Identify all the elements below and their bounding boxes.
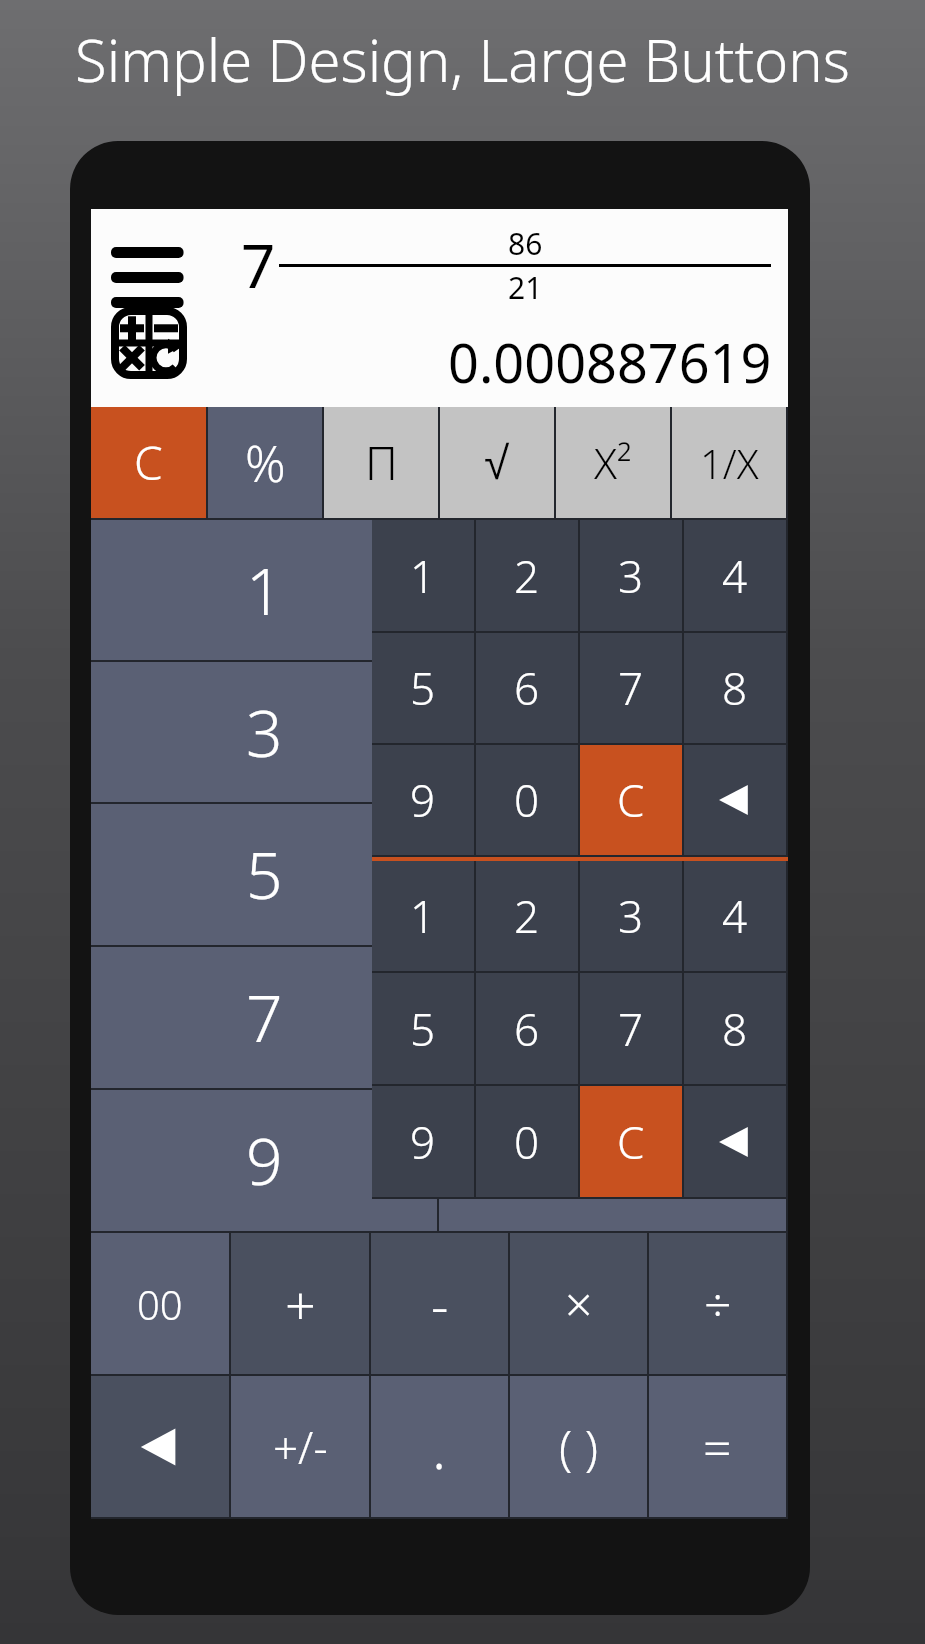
staticText: = xyxy=(703,1413,732,1481)
button[interactable]: 1 xyxy=(372,520,474,631)
staticText: 21 xyxy=(508,267,543,308)
button[interactable]: 2 xyxy=(476,861,578,971)
staticText: +/- xyxy=(273,1417,328,1477)
button[interactable]: × xyxy=(510,1233,647,1374)
staticText: 1 xyxy=(410,886,436,946)
staticText: . xyxy=(432,1407,447,1486)
staticText: 0 xyxy=(514,770,540,830)
staticText: 7 xyxy=(618,999,644,1059)
button[interactable]: ÷ xyxy=(649,1233,786,1374)
button[interactable]: 5 xyxy=(372,973,474,1084)
button[interactable]: 2 xyxy=(476,520,578,631)
staticText: C xyxy=(617,1112,645,1172)
button[interactable]: Backspace xyxy=(684,745,786,855)
staticText: 5 xyxy=(410,658,436,718)
button[interactable]: 1/X xyxy=(672,407,786,518)
button[interactable]: Backspace xyxy=(91,1376,229,1517)
button[interactable]: 9 xyxy=(372,1086,474,1197)
staticText: ( ) xyxy=(559,1414,599,1479)
staticText: 8 xyxy=(722,999,748,1059)
button[interactable]: 1 xyxy=(372,861,474,971)
staticText: 86 xyxy=(508,223,543,264)
staticText: 5 xyxy=(410,999,436,1059)
staticText: ÷ xyxy=(704,1271,732,1336)
button[interactable]: 7 xyxy=(580,633,682,743)
staticText: 0.000887619 xyxy=(448,325,772,399)
button[interactable]: 8 xyxy=(684,973,786,1084)
button[interactable]: C xyxy=(580,745,682,855)
staticText: 9 xyxy=(410,1112,436,1172)
staticText: 7 xyxy=(618,658,644,718)
button[interactable]: Menu xyxy=(111,239,189,301)
button[interactable]: 6 xyxy=(476,973,578,1084)
button[interactable]: 3 xyxy=(91,662,437,802)
staticText: 5 xyxy=(246,831,283,918)
staticText: C xyxy=(134,431,163,494)
button[interactable]: Calculator mode xyxy=(111,307,187,379)
button[interactable]: % xyxy=(208,407,322,518)
button[interactable]: 7 xyxy=(91,947,437,1088)
button[interactable]: 6 xyxy=(476,633,578,743)
button[interactable]: +/- xyxy=(231,1376,369,1517)
staticText: 3 xyxy=(246,689,283,776)
button[interactable]: = xyxy=(649,1376,786,1517)
staticText: - xyxy=(431,1267,449,1341)
staticText: 9 xyxy=(246,1117,283,1204)
button[interactable]: 2 xyxy=(439,520,786,660)
button[interactable]: 8 xyxy=(684,633,786,743)
staticText: 9 xyxy=(410,770,436,830)
button[interactable]: √ xyxy=(440,407,554,518)
staticText: 00 xyxy=(137,1277,183,1331)
staticText: 3 xyxy=(618,546,644,606)
staticText: 6 xyxy=(514,999,540,1059)
staticText: X² xyxy=(594,434,632,491)
staticText: 0 xyxy=(594,1117,631,1204)
button[interactable]: 6 xyxy=(439,804,786,945)
staticText: 1 xyxy=(246,547,283,634)
button[interactable]: 4 xyxy=(684,861,786,971)
staticText: 7 xyxy=(241,224,276,306)
staticText: 6 xyxy=(514,658,540,718)
button[interactable]: 5 xyxy=(91,804,437,945)
staticText: 0 xyxy=(514,1112,540,1172)
staticText: 4 xyxy=(722,886,748,946)
staticText: 4 xyxy=(594,689,631,776)
button[interactable]: 5 xyxy=(372,633,474,743)
button[interactable]: 0 xyxy=(476,745,578,855)
button[interactable]: 3 xyxy=(580,520,682,631)
button[interactable]: X² xyxy=(556,407,670,518)
staticText: 4 xyxy=(722,546,748,606)
staticText: 8 xyxy=(594,974,631,1061)
staticText: 3 xyxy=(618,886,644,946)
button[interactable]: Π xyxy=(324,407,438,518)
button[interactable]: 00 xyxy=(91,1233,229,1374)
staticText: % xyxy=(245,429,286,497)
button[interactable]: 9 xyxy=(372,745,474,855)
button[interactable]: 9 xyxy=(91,1090,437,1231)
button[interactable]: 0 xyxy=(439,1090,786,1231)
staticText: Π xyxy=(365,431,398,494)
staticText: + xyxy=(285,1267,316,1341)
button[interactable]: 4 xyxy=(684,520,786,631)
staticText: √ xyxy=(484,437,510,488)
button[interactable]: 8 xyxy=(439,947,786,1088)
button[interactable]: . xyxy=(371,1376,508,1517)
button[interactable]: C xyxy=(91,407,206,518)
staticText: 2 xyxy=(514,546,540,606)
staticText: × xyxy=(565,1271,593,1336)
button[interactable]: + xyxy=(231,1233,369,1374)
button[interactable]: 1 xyxy=(91,520,437,660)
staticText: 7 xyxy=(246,974,283,1061)
button[interactable]: 0 xyxy=(476,1086,578,1197)
button[interactable]: ( ) xyxy=(510,1376,647,1517)
button[interactable]: 4 xyxy=(439,662,786,802)
staticText: C xyxy=(617,770,645,830)
button[interactable]: 7 xyxy=(580,973,682,1084)
button[interactable]: Backspace xyxy=(684,1086,786,1197)
staticText: 2 xyxy=(514,886,540,946)
staticText: Simple Design, Large Buttons xyxy=(75,20,850,99)
button[interactable]: C xyxy=(580,1086,682,1197)
button[interactable]: - xyxy=(371,1233,508,1374)
staticText: 8 xyxy=(722,658,748,718)
button[interactable]: 3 xyxy=(580,861,682,971)
